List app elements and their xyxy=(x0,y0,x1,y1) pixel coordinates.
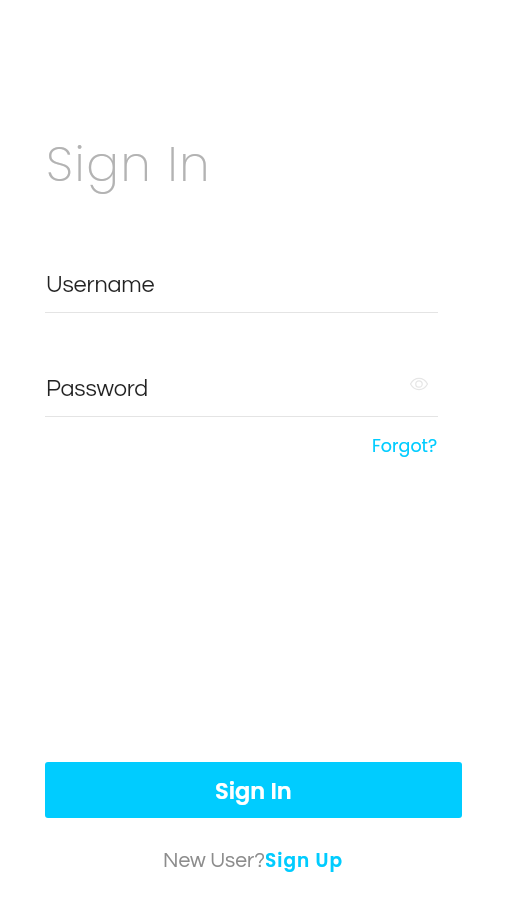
button[interactable]: Sign In xyxy=(45,762,462,818)
staticText: Sign In xyxy=(215,775,292,806)
button[interactable]: Forgot? xyxy=(372,434,438,459)
button[interactable]: Sign Up xyxy=(265,848,344,874)
staticText: Username xyxy=(46,273,155,297)
staticText: Sign In xyxy=(46,130,212,198)
staticText: New User? xyxy=(163,850,265,872)
button[interactable]: Show password xyxy=(404,369,433,398)
staticText: Password xyxy=(46,377,149,401)
